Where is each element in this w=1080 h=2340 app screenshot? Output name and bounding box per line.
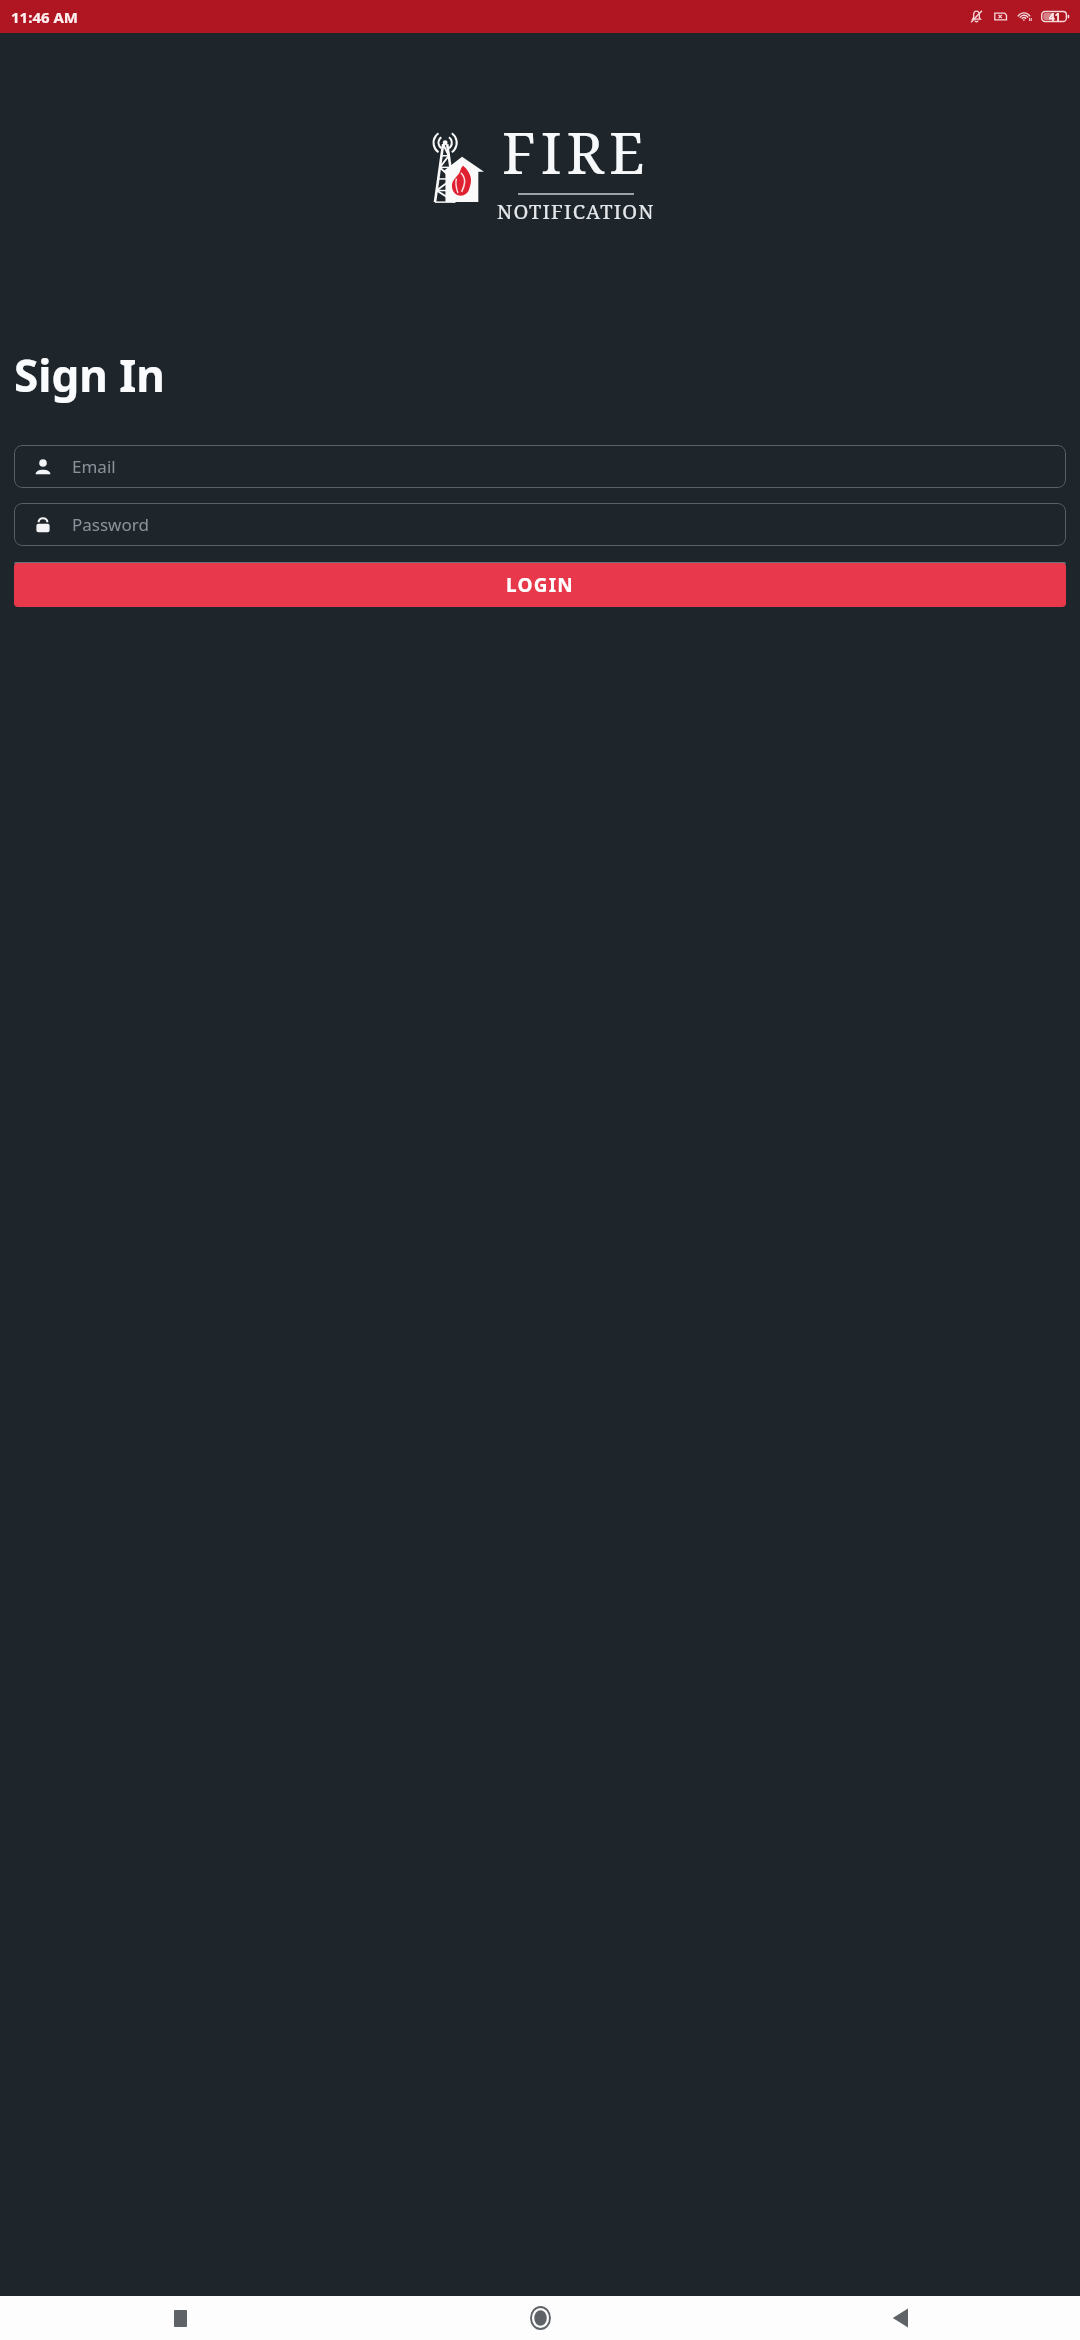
button[interactable]: Email bbox=[14, 445, 1066, 488]
staticText: 41 bbox=[1049, 10, 1061, 24]
button[interactable]: Back bbox=[720, 2296, 1080, 2340]
button[interactable]: LOGIN bbox=[14, 563, 1066, 607]
button[interactable]: Recent apps bbox=[0, 2296, 360, 2340]
staticText: LOGIN bbox=[506, 572, 574, 598]
staticText: NOTIFICATION bbox=[497, 198, 655, 225]
staticText: Sign In bbox=[14, 345, 165, 405]
button[interactable]: Home bbox=[360, 2296, 720, 2340]
staticText: Email bbox=[72, 455, 116, 478]
staticText: FIRE bbox=[502, 113, 650, 191]
staticText: Password bbox=[72, 513, 149, 536]
staticText: 11:46 AM bbox=[11, 7, 78, 27]
button[interactable]: Password bbox=[14, 503, 1066, 546]
